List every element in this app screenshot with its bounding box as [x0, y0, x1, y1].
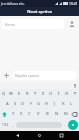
button[interactable]: Komu — [2, 19, 64, 29]
staticText: J — [54, 101, 56, 107]
button[interactable]: C — [25, 109, 34, 119]
staticText: 7 — [50, 90, 52, 93]
staticText: 8 — [58, 90, 60, 93]
staticText: G — [37, 101, 41, 107]
staticText: . — [64, 122, 66, 127]
staticText: I — [58, 91, 60, 97]
staticText: S — [14, 101, 17, 107]
button[interactable]: K — [59, 99, 67, 109]
button[interactable]: Period — [62, 119, 68, 130]
button[interactable]: 5 — [31, 89, 39, 99]
button[interactable]: 4 — [23, 89, 31, 99]
staticText: Y — [12, 111, 15, 117]
button[interactable]: F — [27, 99, 35, 109]
button[interactable]: Send — [68, 120, 78, 130]
button[interactable]: V — [34, 109, 43, 119]
staticText: B — [46, 111, 49, 117]
staticText: ?123 — [2, 123, 9, 127]
staticText: F — [30, 101, 33, 107]
staticText: Nová zpráva — [27, 9, 52, 15]
button[interactable]: N — [52, 109, 61, 119]
staticText: 9 — [66, 90, 68, 93]
button[interactable]: A — [4, 99, 11, 109]
button[interactable]: Backspace — [70, 109, 79, 119]
staticText: T — [34, 91, 37, 97]
button[interactable]: Napište zprávu — [12, 71, 77, 80]
staticText: 6 — [42, 90, 44, 93]
button[interactable]: S — [11, 99, 19, 109]
staticText: 1 — [3, 90, 5, 93]
staticText: X — [20, 111, 23, 117]
staticText: U — [49, 91, 53, 97]
staticText: 4 — [26, 90, 28, 93]
staticText: 10:41 — [69, 1, 78, 6]
staticText: Komu — [5, 22, 15, 27]
staticText: R — [26, 91, 29, 97]
button[interactable]: 8 — [55, 89, 63, 99]
staticText: V — [37, 111, 40, 117]
staticText: 0 — [74, 90, 76, 93]
staticText: K — [62, 101, 65, 107]
staticText: P — [74, 91, 77, 97]
button[interactable]: M — [61, 109, 70, 119]
staticText: Q — [2, 91, 6, 97]
button[interactable]: Back — [13, 131, 22, 140]
staticText: C — [28, 111, 31, 117]
staticText: E — [18, 91, 21, 97]
button[interactable]: 6 — [39, 89, 47, 99]
staticText: D — [21, 101, 25, 107]
staticText: 3 — [18, 90, 20, 93]
staticText: M — [64, 111, 68, 117]
button[interactable]: L — [67, 99, 75, 109]
button[interactable]: Comma — [10, 119, 16, 130]
button[interactable]: 2 — [7, 89, 15, 99]
button[interactable]: D — [19, 99, 27, 109]
button[interactable]: Home — [35, 131, 44, 140]
button[interactable]: 1 — [0, 89, 7, 99]
staticText: W — [9, 91, 13, 97]
button[interactable]: J — [51, 99, 59, 109]
staticText: 2 — [10, 90, 12, 93]
button[interactable]: G — [35, 99, 43, 109]
staticText: O — [65, 91, 69, 97]
staticText: Z — [42, 91, 45, 97]
button[interactable]: Recents — [57, 131, 66, 140]
staticText: L — [70, 101, 73, 107]
button[interactable]: 9 — [63, 89, 71, 99]
button[interactable]: 3 — [15, 89, 23, 99]
staticText: Napište zprávu — [15, 73, 39, 78]
staticText: , — [12, 122, 14, 127]
button[interactable]: Shift — [0, 109, 9, 119]
button[interactable]: ?123 — [1, 119, 10, 130]
button[interactable]: Voice input — [72, 83, 77, 88]
button[interactable]: Add contact — [66, 18, 77, 29]
button[interactable]: Add attachment — [2, 71, 11, 80]
staticText: N — [55, 111, 59, 117]
button[interactable]: 0 — [71, 89, 79, 99]
staticText: Jen dalkova sits. — [1, 2, 25, 6]
staticText: 5 — [34, 90, 36, 93]
button[interactable]: X — [17, 109, 25, 119]
button[interactable]: Y — [9, 109, 17, 119]
staticText: H — [45, 101, 49, 107]
button[interactable]: H — [43, 99, 51, 109]
button[interactable]: 7 — [47, 89, 55, 99]
button[interactable]: B — [43, 109, 52, 119]
staticText: A — [6, 101, 9, 107]
